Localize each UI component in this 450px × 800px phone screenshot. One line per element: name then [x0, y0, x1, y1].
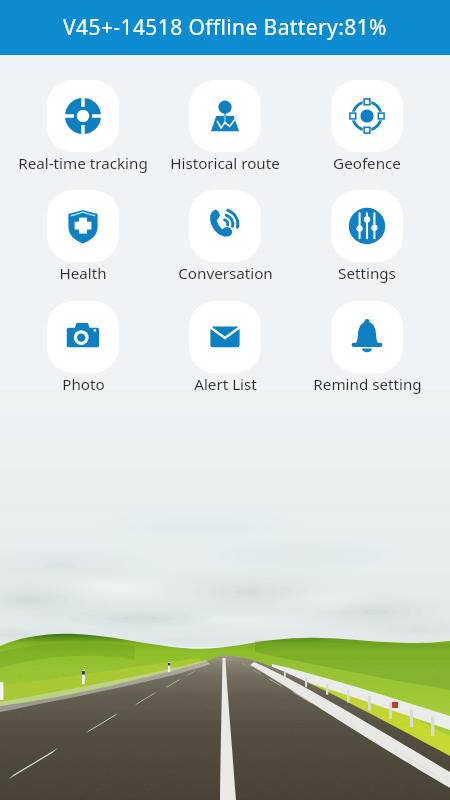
button[interactable]: Photo	[12, 301, 154, 395]
staticText: Remind setting	[313, 374, 422, 395]
staticText: Alert List	[194, 374, 257, 395]
button[interactable]: Geofence	[296, 80, 438, 174]
button[interactable]: Settings	[296, 190, 438, 284]
staticText: Historical route	[170, 153, 280, 174]
staticText: V45+-14518 Offline Battery:81%	[63, 13, 387, 42]
staticText: Real-time tracking	[18, 153, 148, 174]
staticText: Health	[59, 263, 107, 284]
button[interactable]: Health	[12, 190, 154, 284]
button[interactable]: Historical route	[154, 80, 296, 174]
staticText: Photo	[62, 374, 105, 395]
button[interactable]: Remind setting	[296, 301, 438, 395]
button[interactable]: Real-time tracking	[12, 80, 154, 174]
staticText: Geofence	[333, 153, 401, 174]
staticText: Conversation	[178, 263, 273, 284]
button[interactable]: Conversation	[154, 190, 296, 284]
button[interactable]: Alert List	[154, 301, 296, 395]
staticText: Settings	[338, 263, 396, 284]
